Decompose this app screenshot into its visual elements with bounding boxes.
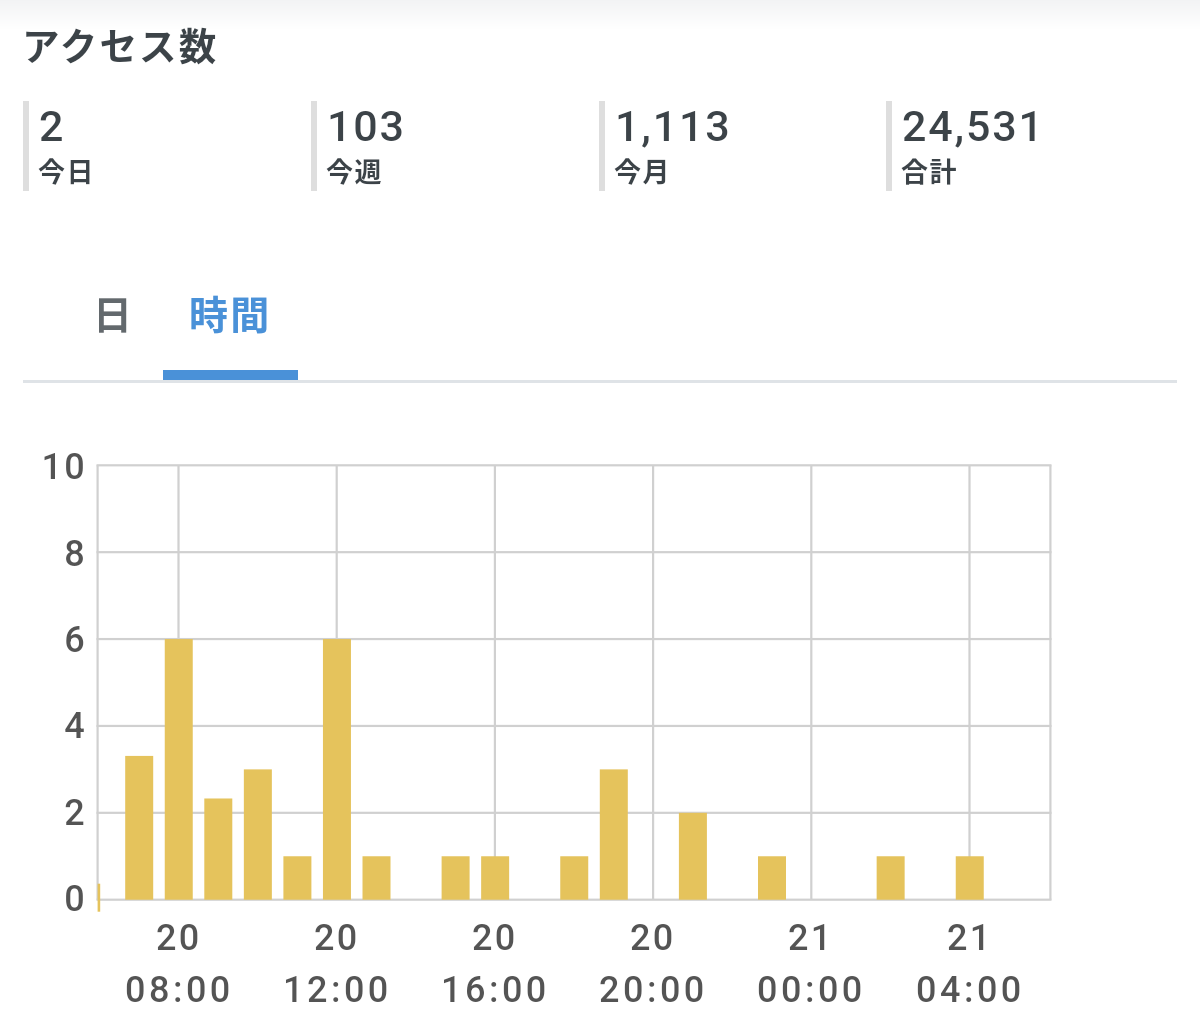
staticText: 1,113	[615, 101, 732, 151]
staticText: 0	[0, 878, 87, 920]
staticText: 20	[472, 917, 518, 959]
staticText: 今月	[614, 151, 672, 190]
button[interactable]: 時間	[163, 266, 298, 380]
staticText: 12:00	[283, 969, 392, 1011]
staticText: 20	[156, 917, 202, 959]
staticText: 10	[0, 446, 87, 488]
button[interactable]: 24,531	[886, 101, 1174, 191]
staticText: 20	[630, 917, 676, 959]
staticText: 103	[327, 101, 406, 151]
staticText: 日	[93, 284, 135, 340]
staticText: 合計	[901, 151, 959, 190]
staticText: 8	[0, 533, 87, 575]
staticText: 00:00	[757, 969, 866, 1011]
staticText: 時間	[189, 284, 272, 340]
button[interactable]: 日	[68, 266, 159, 380]
other: アクセス数の時間別グラフ	[0, 0, 1200, 1025]
button[interactable]: 2	[23, 101, 311, 191]
staticText: 2	[39, 101, 66, 151]
staticText: 16:00	[441, 969, 550, 1011]
staticText: 2	[0, 792, 87, 834]
staticText: アクセス数	[22, 16, 219, 70]
staticText: 今日	[38, 151, 96, 190]
staticText: 4	[0, 705, 87, 747]
staticText: 24,531	[902, 101, 1045, 151]
staticText: 今週	[326, 151, 384, 190]
staticText: 21	[788, 917, 834, 959]
button[interactable]: 103	[311, 101, 599, 191]
staticText: 21	[947, 917, 993, 959]
staticText: 04:00	[916, 969, 1025, 1011]
staticText: 08:00	[125, 969, 234, 1011]
staticText: 20:00	[599, 969, 708, 1011]
staticText: 6	[0, 619, 87, 661]
button[interactable]: 1,113	[599, 101, 887, 191]
staticText: 20	[314, 917, 360, 959]
